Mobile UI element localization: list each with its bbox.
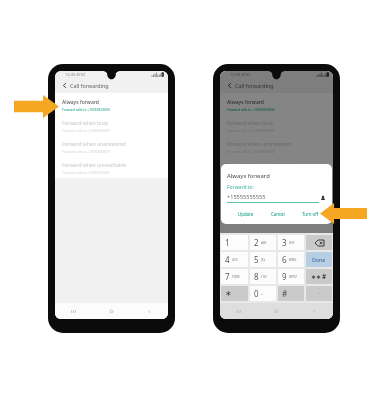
button[interactable]: Cancel	[269, 209, 287, 219]
other: Backspace	[315, 240, 324, 246]
staticText: ∗∗	[311, 273, 322, 280]
staticText: Cancel	[271, 211, 285, 217]
staticText: ABC	[261, 241, 267, 245]
button[interactable]: Navigate up	[55, 78, 70, 93]
staticText: +15555555555	[227, 193, 266, 201]
staticText: Turn off	[302, 211, 319, 217]
button[interactable]: 0	[250, 286, 276, 301]
button[interactable]: ∗	[221, 286, 248, 301]
button[interactable]: 9	[278, 269, 304, 284]
staticText: PQRS	[232, 275, 240, 279]
other: Step 2 arrow	[320, 203, 367, 224]
button[interactable]: Recent apps	[55, 303, 92, 319]
staticText: Forward when unreachable	[62, 162, 127, 169]
staticText: Call forwarding	[235, 82, 274, 89]
staticText: 6	[282, 254, 287, 265]
button[interactable]: 5	[250, 252, 276, 267]
staticText: Always forward	[227, 99, 264, 106]
button[interactable]: Forward when unanswered	[220, 135, 333, 156]
staticText: Forward calls to +15555555555	[227, 149, 275, 153]
button[interactable]: 1	[221, 235, 248, 250]
button[interactable]: ∗∗	[306, 269, 332, 284]
staticText: Forward calls to +15555555555	[227, 128, 275, 132]
button[interactable]: Always forward	[220, 93, 333, 114]
staticText: Update	[238, 211, 254, 217]
button[interactable]: Done	[306, 252, 332, 267]
staticText: #	[322, 272, 327, 281]
staticText: GHI	[232, 258, 238, 262]
staticText: MNO	[289, 258, 297, 262]
button[interactable]: Forward when busy	[220, 114, 333, 135]
button[interactable]: Forward when unanswered	[55, 135, 168, 156]
staticText: 5	[254, 254, 259, 265]
button[interactable]: #	[278, 286, 304, 301]
staticText: Always forward	[227, 172, 270, 180]
button[interactable]: Always forward	[55, 93, 168, 114]
button[interactable]: 6	[278, 252, 304, 267]
button[interactable]: 3	[278, 235, 304, 250]
button[interactable]: Back	[130, 303, 168, 319]
button[interactable]: 2	[250, 235, 276, 250]
staticText: Forward calls to +15555555555	[62, 170, 110, 174]
button[interactable]: Turn off	[300, 209, 321, 219]
other: Step 1 arrow	[14, 95, 59, 118]
staticText: Forward when unanswered	[227, 141, 292, 148]
staticText: Always forward	[62, 99, 99, 106]
staticText: ∗	[225, 289, 232, 298]
button[interactable]: 7	[221, 269, 248, 284]
button[interactable]: Recent apps	[220, 303, 257, 319]
button[interactable]: Home	[92, 303, 130, 319]
staticText: Forward when unreachable	[227, 162, 292, 169]
staticText: Forward when busy	[62, 120, 109, 127]
staticText: 3	[282, 237, 287, 248]
button[interactable]: Navigate up	[220, 78, 235, 93]
staticText: 0	[254, 288, 259, 299]
staticText: Forward calls to +15555555555	[62, 107, 110, 111]
staticText: Forward calls to +15555555555	[227, 107, 275, 111]
button[interactable]: Back	[295, 303, 333, 319]
staticText: WXYZ	[289, 275, 297, 279]
staticText: Forward when busy	[227, 120, 274, 127]
staticText: Forward calls to +15555555555	[62, 128, 110, 132]
staticText: Forward calls to +15555555555	[62, 149, 110, 153]
button[interactable]: 8	[250, 269, 276, 284]
button[interactable]: Backspace	[306, 235, 332, 250]
button[interactable]: 4	[221, 252, 248, 267]
staticText: 9	[282, 271, 287, 282]
staticText: 7	[225, 271, 230, 282]
button[interactable]: Pick contact	[319, 194, 327, 202]
staticText: 12:45 AT&T	[65, 72, 86, 77]
button[interactable]: Forward when unreachable	[220, 156, 333, 177]
staticText: DEF	[289, 241, 295, 245]
staticText: Call forwarding	[70, 82, 109, 89]
staticText: JKL	[261, 258, 266, 262]
staticText: Forward to:	[227, 184, 254, 191]
staticText: Forward when unanswered	[62, 141, 127, 148]
staticText: #	[282, 288, 288, 299]
button[interactable]: Forward when unreachable	[55, 156, 168, 177]
staticText: 2	[254, 237, 259, 248]
button[interactable]: Update	[236, 209, 256, 219]
staticText: Done	[312, 256, 326, 263]
staticText: 12:45 AT&T	[230, 72, 251, 77]
staticText: 4	[225, 254, 230, 265]
button[interactable]: Forward when busy	[55, 114, 168, 135]
staticText: 8	[254, 271, 259, 282]
staticText: +	[261, 292, 263, 296]
staticText: TUV	[261, 275, 267, 279]
staticText: 1	[225, 237, 230, 248]
